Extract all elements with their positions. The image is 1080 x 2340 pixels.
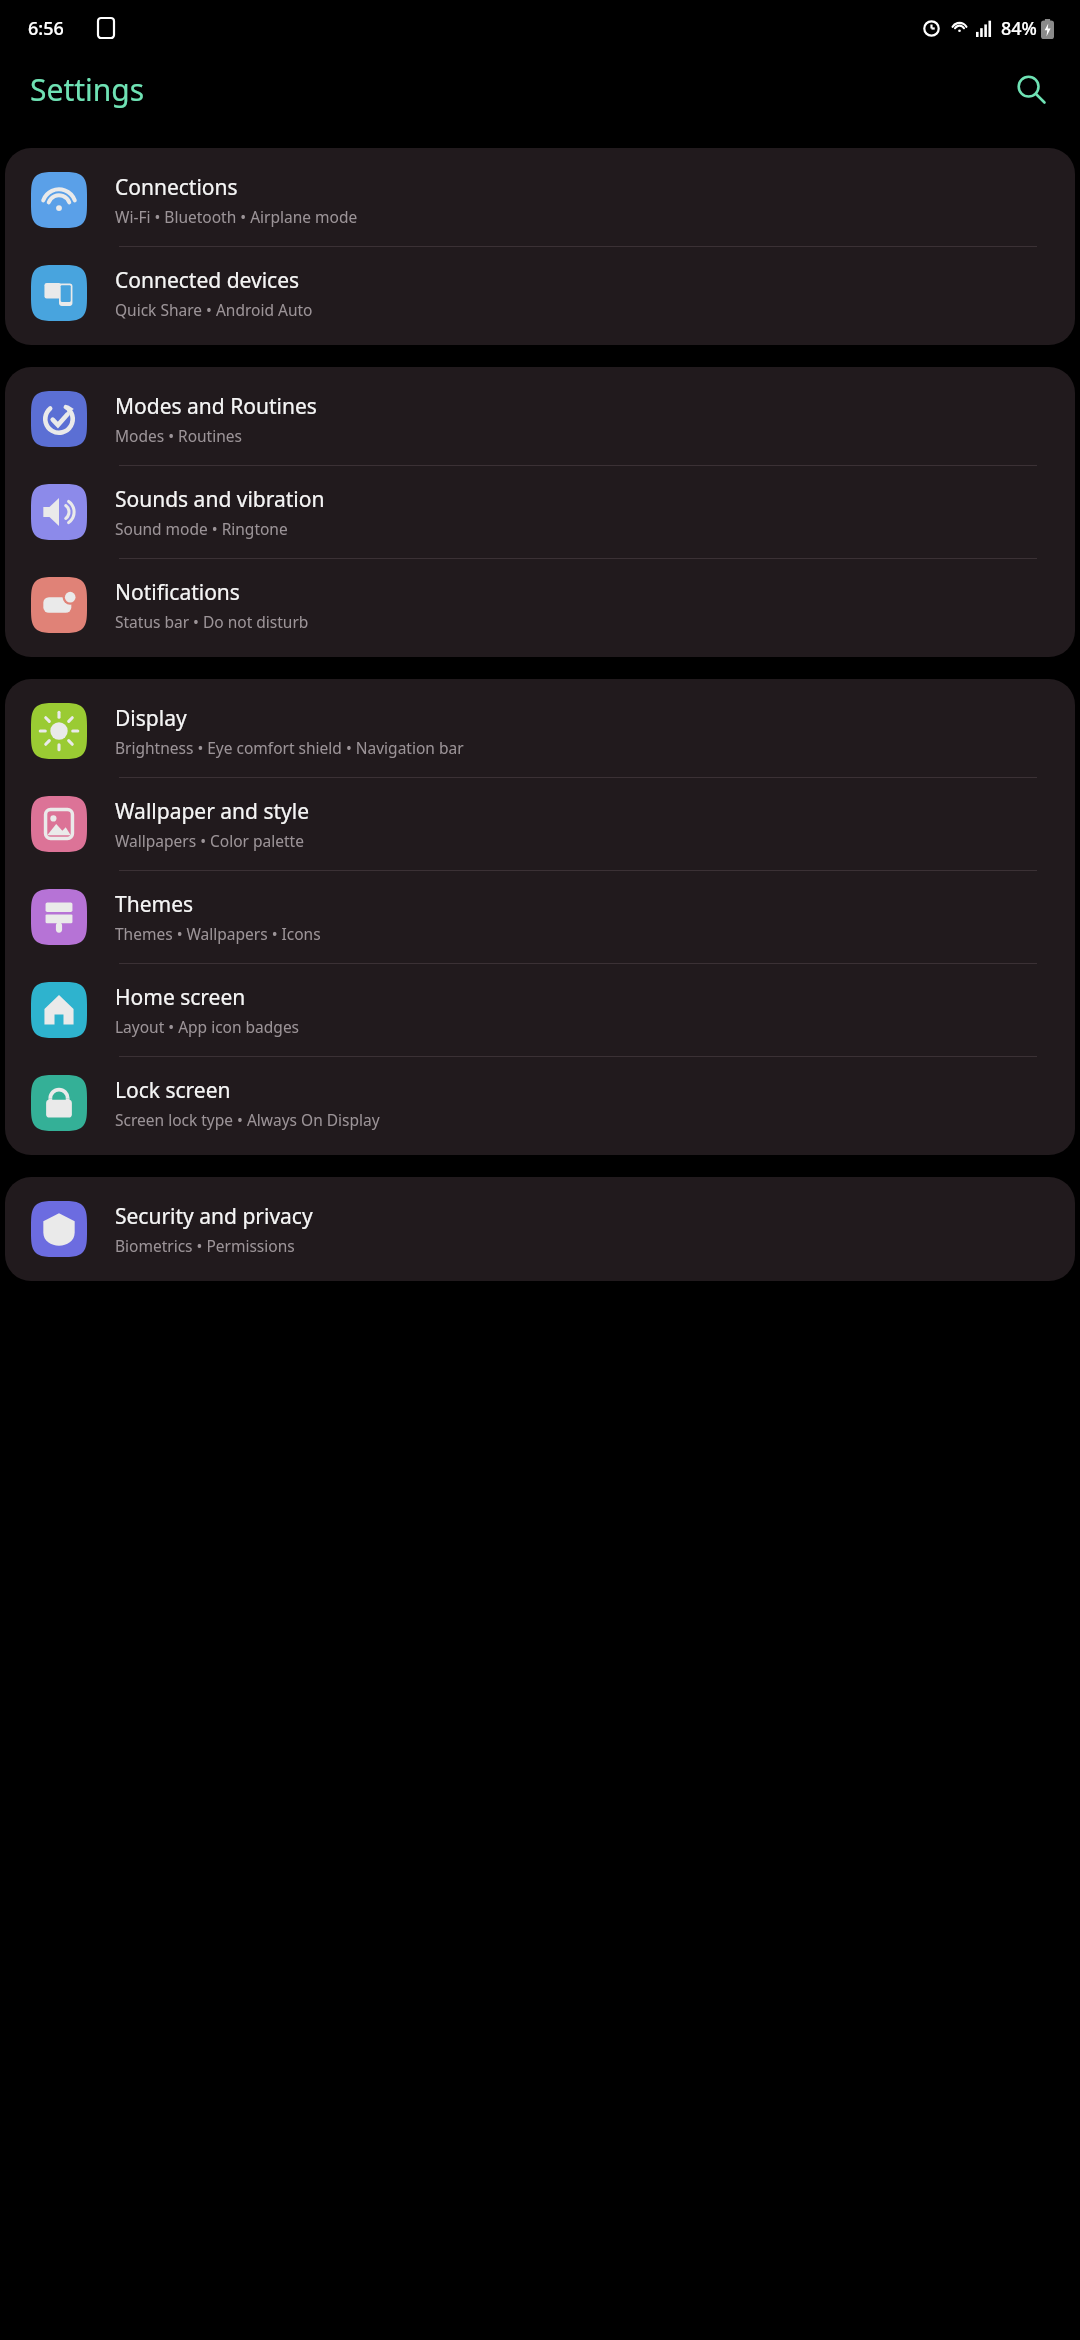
- staticText: Sound mode • Ringtone: [115, 518, 288, 539]
- staticText: Screen lock type • Always On Display: [115, 1109, 380, 1130]
- staticText: Status bar • Do not disturb: [115, 611, 309, 632]
- staticText: Lock screen: [115, 1076, 231, 1105]
- staticText: Notifications: [115, 578, 240, 607]
- button[interactable]: Modes and Routines: [5, 373, 1075, 465]
- staticText: Home screen: [115, 983, 246, 1012]
- staticText: 84%: [1001, 16, 1037, 41]
- button[interactable]: Connections: [5, 154, 1075, 246]
- staticText: Modes • Routines: [115, 425, 242, 446]
- button[interactable]: Search: [1008, 66, 1054, 112]
- button[interactable]: Sounds and vibration: [5, 466, 1075, 558]
- staticText: Biometrics • Permissions: [115, 1235, 295, 1256]
- button[interactable]: Security and privacy: [5, 1183, 1075, 1275]
- staticText: Connections: [115, 173, 238, 202]
- staticText: Security and privacy: [115, 1202, 313, 1231]
- staticText: Sounds and vibration: [115, 485, 325, 514]
- staticText: Quick Share • Android Auto: [115, 299, 313, 320]
- button[interactable]: Lock screen: [5, 1057, 1075, 1149]
- button[interactable]: Notifications: [5, 559, 1075, 651]
- staticText: 6:56: [28, 16, 64, 41]
- staticText: Brightness • Eye comfort shield • Naviga…: [115, 737, 464, 758]
- button[interactable]: Home screen: [5, 964, 1075, 1056]
- staticText: Wi-Fi • Bluetooth • Airplane mode: [115, 206, 358, 227]
- button[interactable]: Connected devices: [5, 247, 1075, 339]
- staticText: Wallpaper and style: [115, 797, 310, 826]
- staticText: Display: [115, 704, 187, 733]
- staticText: Themes: [115, 890, 194, 919]
- staticText: Settings: [30, 69, 145, 110]
- button[interactable]: Themes: [5, 871, 1075, 963]
- staticText: Connected devices: [115, 266, 300, 295]
- button[interactable]: Wallpaper and style: [5, 778, 1075, 870]
- button[interactable]: Display: [5, 685, 1075, 777]
- staticText: Themes • Wallpapers • Icons: [115, 923, 321, 944]
- staticText: Layout • App icon badges: [115, 1016, 300, 1037]
- staticText: Wallpapers • Color palette: [115, 830, 304, 851]
- staticText: Modes and Routines: [115, 392, 317, 421]
